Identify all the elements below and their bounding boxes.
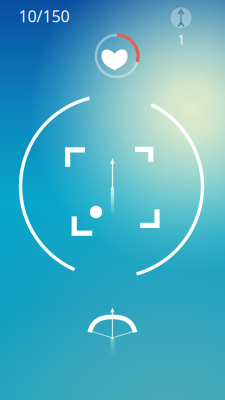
button[interactable]: Arrows remaining: 1 — [166, 7, 196, 49]
staticText: 10/150 — [18, 5, 69, 27]
staticText: 1 — [177, 29, 185, 49]
